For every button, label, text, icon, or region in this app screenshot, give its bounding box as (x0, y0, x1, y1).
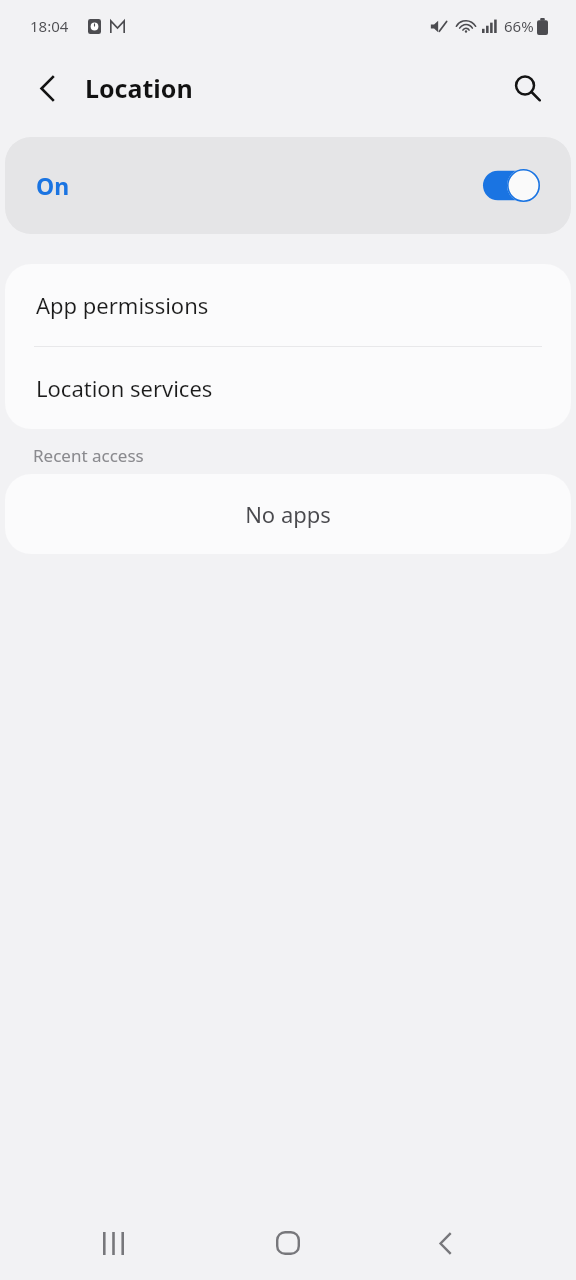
button[interactable]: Back (407, 1213, 483, 1273)
staticText: Location (85, 71, 193, 105)
button[interactable]: Location services (5, 347, 571, 429)
staticText: Recent access (33, 444, 144, 467)
button[interactable]: Search (503, 64, 551, 112)
button[interactable]: Recent apps (75, 1213, 151, 1273)
button[interactable]: Location toggle, on (483, 169, 540, 202)
staticText: 18:04 (30, 16, 69, 36)
staticText: No apps (245, 499, 331, 529)
staticText: App permissions (36, 290, 209, 320)
staticText: Location services (36, 373, 213, 403)
button[interactable]: App permissions (5, 264, 571, 346)
button[interactable]: Back (23, 64, 71, 112)
staticText: On (36, 170, 70, 201)
staticText: 66% (504, 16, 534, 36)
button[interactable]: No apps (5, 474, 571, 554)
button[interactable]: Home (250, 1213, 326, 1273)
button[interactable]: On (5, 137, 571, 234)
